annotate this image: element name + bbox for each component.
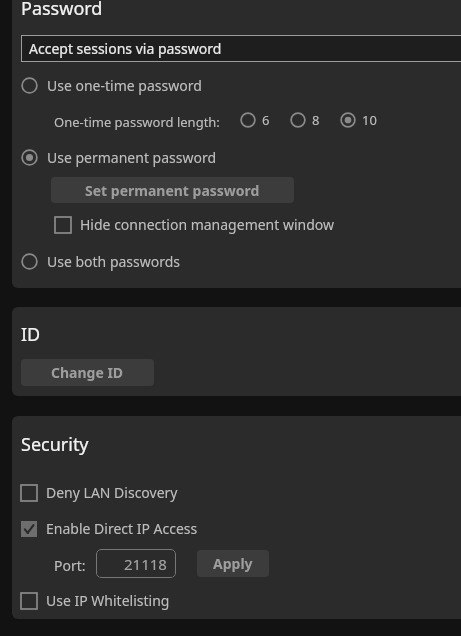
staticText: Use one-time password	[47, 76, 202, 95]
staticText: Enable Direct IP Access	[46, 519, 198, 538]
button[interactable]: 8	[290, 111, 320, 129]
staticText: Deny LAN Discovery	[46, 483, 178, 502]
staticText: Apply	[213, 554, 253, 573]
button[interactable]: 21118	[96, 549, 176, 578]
staticText: Use IP Whitelisting	[46, 591, 170, 610]
button[interactable]: Use permanent password	[21, 148, 251, 167]
button[interactable]: Use one-time password	[21, 76, 251, 95]
button[interactable]: Deny LAN Discovery	[21, 483, 251, 502]
staticText: Port:	[54, 556, 86, 575]
button[interactable]: Hide connection management window	[55, 215, 345, 234]
button[interactable]: Use both passwords	[21, 252, 251, 271]
staticText: 6	[262, 111, 270, 129]
staticText: 8	[312, 111, 320, 129]
staticText: Use permanent password	[47, 148, 217, 167]
button[interactable]: 6	[240, 111, 270, 129]
button[interactable]: Use IP Whitelisting	[21, 591, 251, 610]
staticText: ID	[21, 322, 41, 347]
button[interactable]: 10	[340, 111, 377, 129]
button[interactable]: Apply	[197, 550, 269, 577]
staticText: Accept sessions via password	[29, 39, 222, 58]
staticText: Security	[21, 432, 89, 457]
staticText: One-time password length:	[54, 113, 220, 131]
staticText: Change ID	[51, 363, 124, 382]
staticText: 10	[362, 111, 377, 129]
button[interactable]: Set permanent password	[51, 177, 294, 203]
staticText: Hide connection management window	[80, 215, 335, 234]
button[interactable]: Accept sessions via password	[21, 35, 461, 62]
button[interactable]: Enable Direct IP Access	[21, 519, 251, 538]
staticText: Password	[21, 0, 103, 21]
staticText: Set permanent password	[85, 181, 260, 200]
staticText: 21118	[124, 554, 167, 574]
button[interactable]: Change ID	[21, 359, 154, 386]
staticText: Use both passwords	[47, 252, 181, 271]
